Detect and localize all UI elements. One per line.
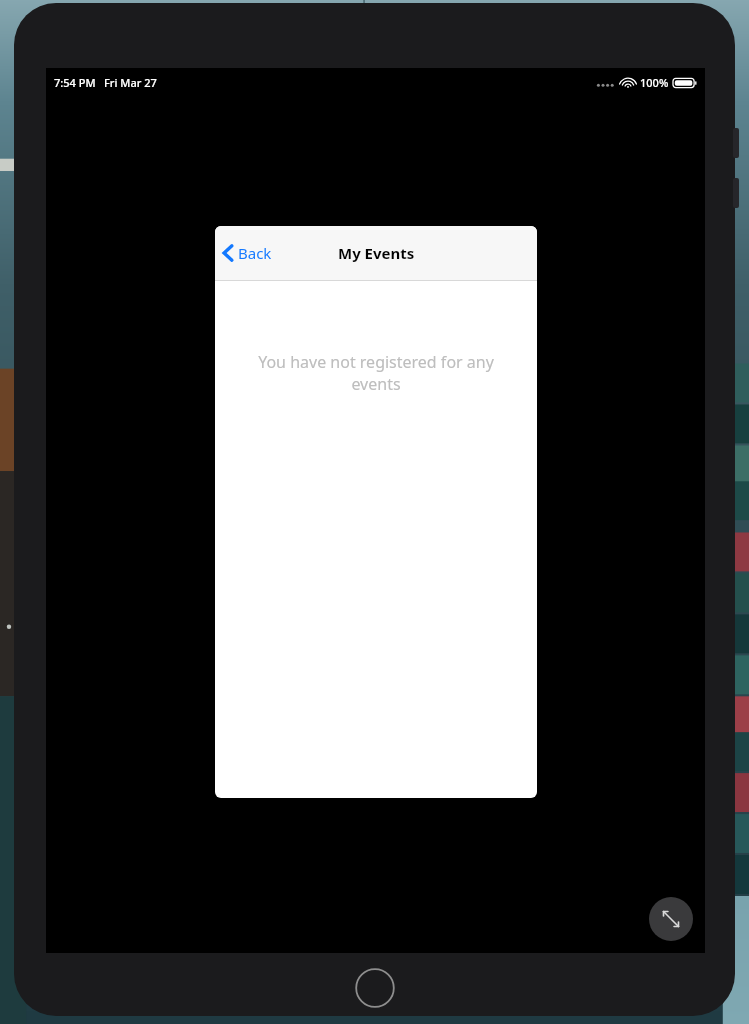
button[interactable]: Back: [221, 243, 272, 263]
staticText: You have not registered for any events: [233, 351, 519, 395]
staticText: Fri Mar 27: [104, 75, 157, 90]
staticText: My Events: [338, 243, 415, 263]
button[interactable]: Home: [355, 968, 395, 1008]
staticText: Back: [238, 243, 272, 263]
staticText: 7:54 PM: [54, 75, 96, 90]
button[interactable]: Expand: [649, 897, 693, 941]
staticText: 100%: [640, 75, 669, 90]
